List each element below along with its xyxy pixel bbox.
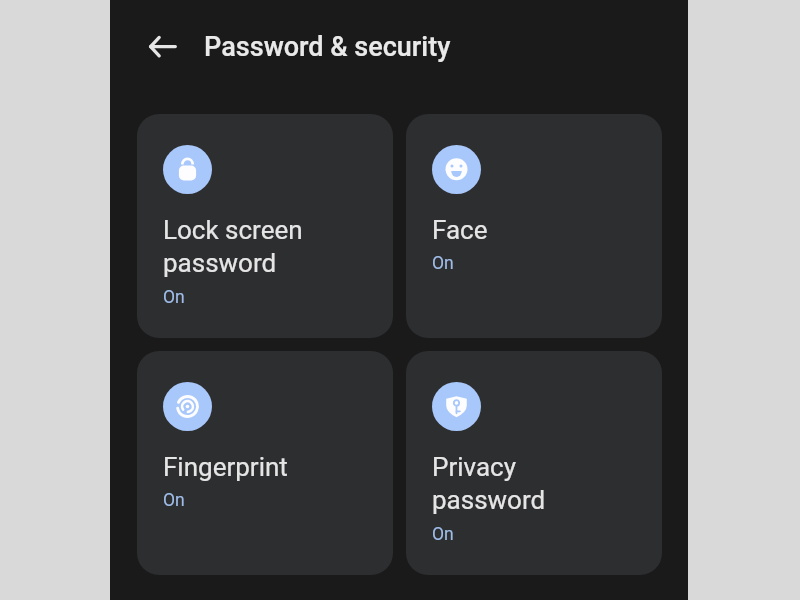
button[interactable]: Privacy password [406,351,662,575]
staticText: On [163,287,185,308]
staticText: Password & security [204,31,451,63]
staticText: Fingerprint [163,452,288,482]
staticText: Lock screen password [163,215,303,278]
staticText: On [163,490,185,511]
staticText: On [432,524,454,545]
staticText: On [432,253,454,274]
staticText: Privacy password [432,452,546,515]
button[interactable]: Face [406,114,662,338]
button[interactable] [136,24,188,70]
button[interactable]: Lock screen password [137,114,393,338]
button[interactable]: Fingerprint [137,351,393,575]
staticText: Face [432,215,488,245]
